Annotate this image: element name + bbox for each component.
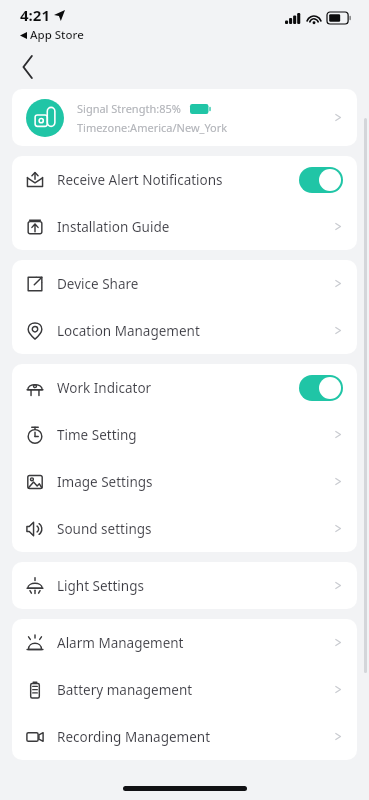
button[interactable]: Receive Alert Notifications [12,156,357,203]
staticText: Receive Alert Notifications [57,171,299,189]
button[interactable]: Battery management [12,666,357,713]
staticText: Alarm Management [57,634,334,652]
button[interactable]: Recording Management [12,713,357,760]
button[interactable]: Light Settings [12,562,357,609]
button[interactable]: Signal Strength:85% [12,89,357,146]
staticText: Light Settings [57,577,334,595]
button[interactable]: Image Settings [12,458,357,505]
staticText: Installation Guide [57,218,334,236]
staticText: Work Indicator [57,379,299,397]
button[interactable]: Alarm Management [12,619,357,666]
button[interactable]: Sound settings [12,505,357,552]
staticText: Recording Management [57,728,334,746]
button[interactable]: Back [10,49,46,85]
button[interactable]: Toggle Receive Alert Notifications [299,167,343,193]
staticText: App Store [30,27,84,43]
button[interactable]: Time Setting [12,411,357,458]
button[interactable]: Location Management [12,307,357,354]
staticText: Image Settings [57,473,334,491]
staticText: Signal Strength:85% [77,101,181,116]
button[interactable]: Installation Guide [12,203,357,250]
button[interactable]: Device Share [12,260,357,307]
staticText: Timezone:America/New_York [77,120,228,135]
staticText: Sound settings [57,520,334,538]
staticText: Location Management [57,322,334,340]
button[interactable]: Toggle Work Indicator [299,375,343,401]
button[interactable]: Work Indicator [12,364,357,411]
staticText: Device Share [57,275,334,293]
staticText: Battery management [57,681,334,699]
staticText: Time Setting [57,426,334,444]
staticText: 4:21 [20,5,50,25]
